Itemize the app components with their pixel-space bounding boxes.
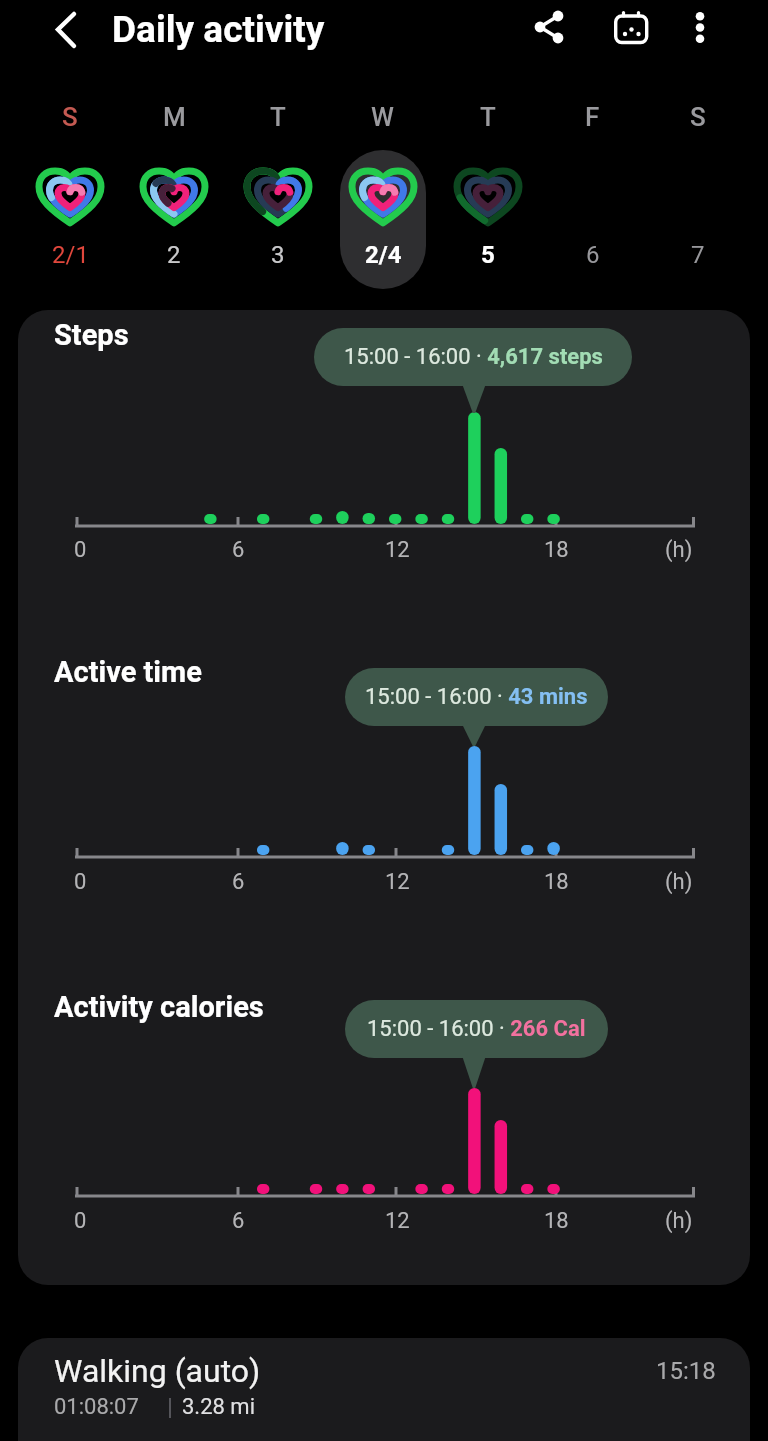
staticText: F xyxy=(585,102,600,132)
staticText: S xyxy=(62,102,78,132)
staticText: 3 xyxy=(271,241,285,269)
staticText: 12 xyxy=(385,537,410,563)
staticText: 7 xyxy=(691,241,705,269)
staticText: Daily activity xyxy=(112,8,325,51)
button[interactable] xyxy=(674,2,726,54)
staticText: S xyxy=(690,102,706,132)
staticText: T xyxy=(480,102,496,132)
staticText: 0 xyxy=(74,1208,87,1234)
staticText: 15:00 - 16:00 · 266 Cal xyxy=(367,1016,586,1042)
staticText: M xyxy=(163,102,186,132)
staticText: 12 xyxy=(385,869,410,895)
staticText: 6 xyxy=(232,869,245,895)
staticText: 3.28 mi xyxy=(182,1394,255,1420)
button[interactable] xyxy=(523,2,575,54)
staticText: 18 xyxy=(544,869,569,895)
staticText: 0 xyxy=(74,537,87,563)
button[interactable]: 2/1 xyxy=(18,150,122,289)
staticText: 18 xyxy=(544,537,569,563)
button[interactable] xyxy=(605,2,657,54)
button[interactable]: 7 xyxy=(645,150,750,289)
staticText: 15:00 - 16:00 · 43 mins xyxy=(365,684,588,710)
button[interactable]: 2 xyxy=(122,150,226,289)
staticText: (h) xyxy=(665,537,693,563)
staticText: 15:00 - 16:00 · 4,617 steps xyxy=(344,344,603,370)
staticText: Steps xyxy=(54,318,129,352)
staticText: 18 xyxy=(544,1208,569,1234)
staticText: Walking (auto) xyxy=(54,1352,261,1390)
staticText: W xyxy=(371,102,394,132)
staticText: 6 xyxy=(586,241,600,269)
staticText: Active time xyxy=(54,655,202,689)
button[interactable]: 2/4 xyxy=(330,150,435,289)
staticText: 12 xyxy=(385,1208,410,1234)
staticText: (h) xyxy=(665,869,693,895)
button[interactable] xyxy=(40,4,92,56)
staticText: 5 xyxy=(481,241,495,269)
staticText: 2/4 xyxy=(365,241,402,269)
staticText: 2 xyxy=(167,241,181,269)
staticText: (h) xyxy=(665,1208,693,1234)
button[interactable]: 6 xyxy=(540,150,645,289)
staticText: 6 xyxy=(232,1208,245,1234)
button[interactable]: 5 xyxy=(435,150,540,289)
staticText: 0 xyxy=(74,869,87,895)
staticText: T xyxy=(270,102,286,132)
button[interactable] xyxy=(18,1338,750,1441)
staticText: 6 xyxy=(232,537,245,563)
button[interactable]: 3 xyxy=(226,150,330,289)
staticText: 2/1 xyxy=(52,241,89,269)
staticText: 15:18 xyxy=(656,1357,716,1385)
staticText: 01:08:07 xyxy=(54,1394,139,1420)
staticText: Activity calories xyxy=(54,990,264,1024)
